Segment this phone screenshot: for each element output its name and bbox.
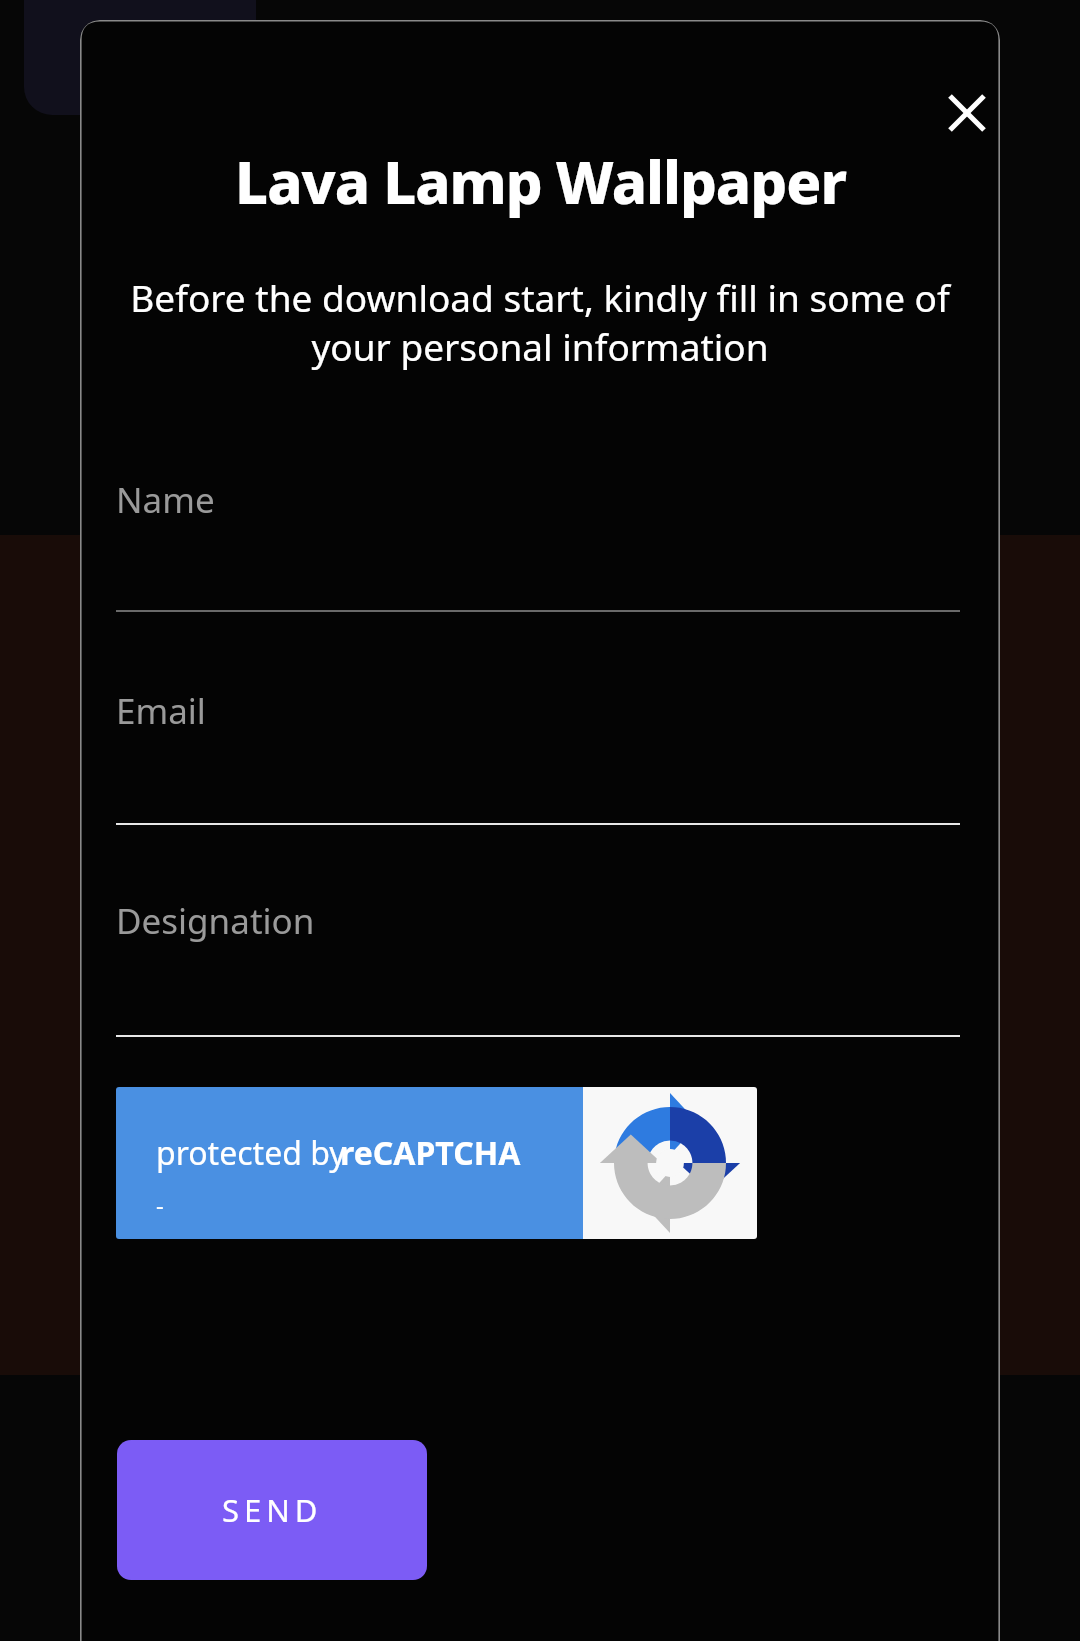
staticText: protected by: [156, 1131, 354, 1175]
button[interactable]: Designation: [116, 875, 960, 1051]
button[interactable]: protected by: [116, 1087, 757, 1239]
staticText: SEND: [222, 1489, 323, 1531]
staticText: Name: [116, 476, 215, 524]
button[interactable]: Name: [116, 454, 960, 626]
button[interactable]: Email: [116, 665, 960, 839]
staticText: -: [156, 1188, 164, 1221]
button[interactable]: Close: [914, 60, 1000, 166]
staticText: Before the download start, kindly fill i…: [98, 272, 982, 372]
staticText: Email: [116, 687, 206, 735]
staticText: reCAPTCHA: [340, 1131, 521, 1175]
staticText: Lava Lamp Wallpaper: [235, 142, 846, 221]
button[interactable]: SEND: [117, 1440, 427, 1580]
staticText: Designation: [116, 897, 315, 945]
